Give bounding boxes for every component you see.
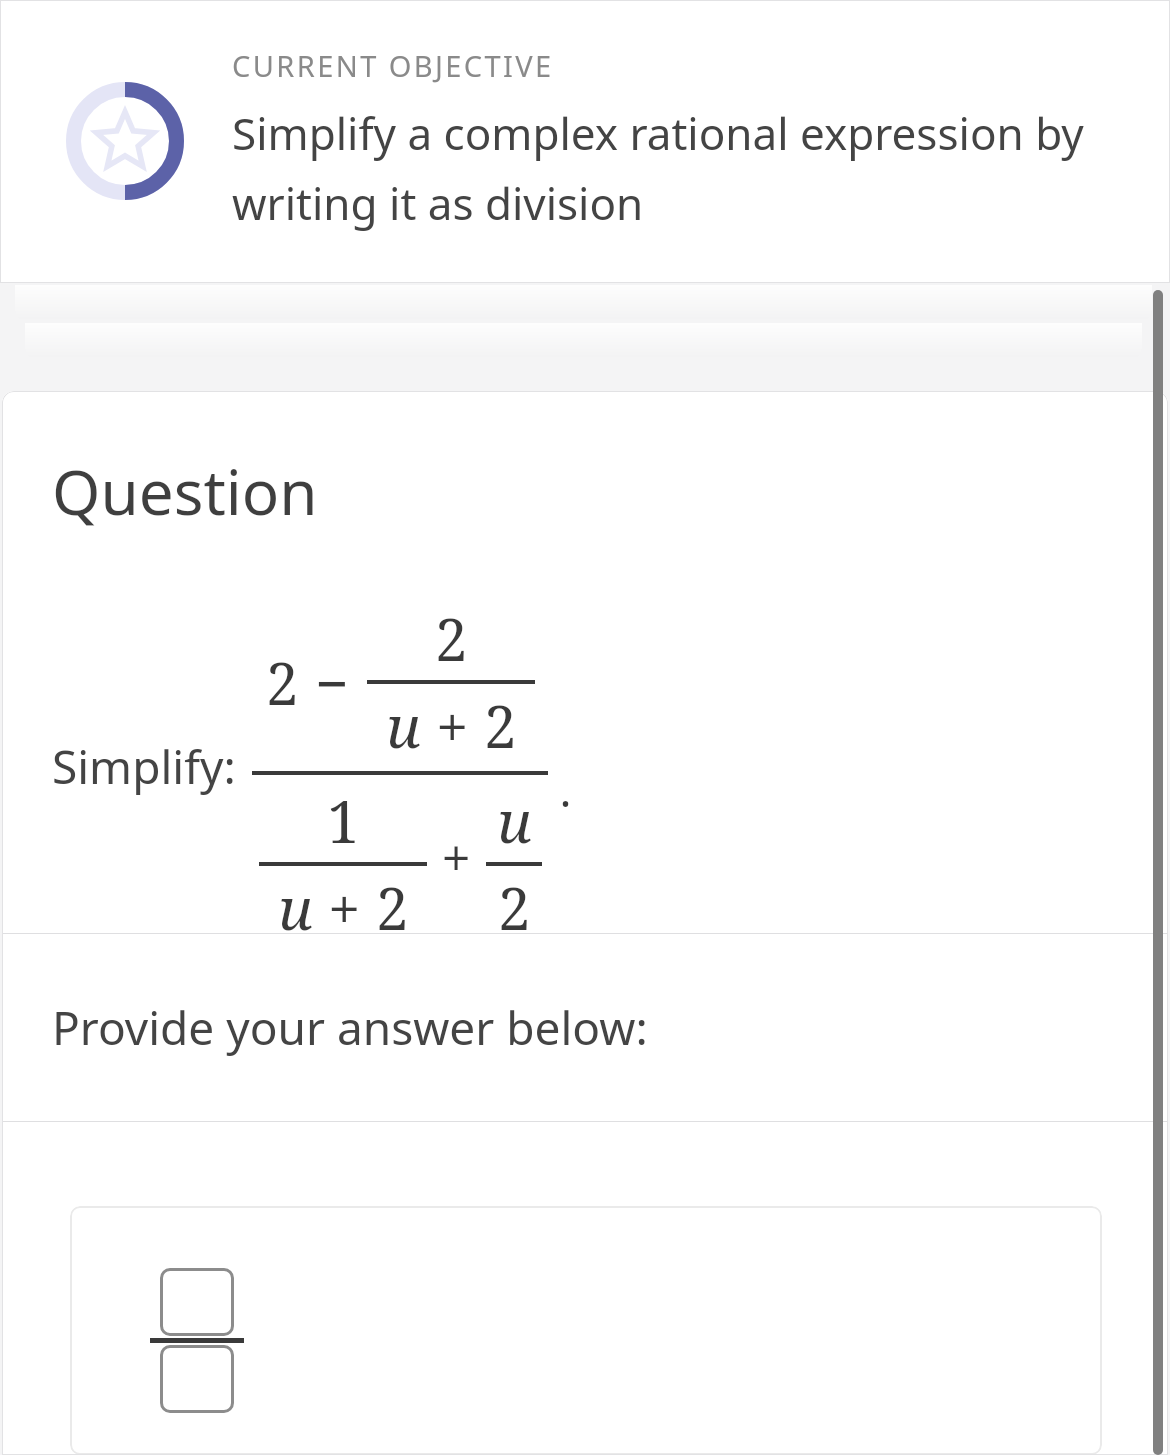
staticText: + [421,686,484,765]
button[interactable]: Denominator input [160,1345,234,1413]
staticText: 2 [498,868,531,933]
staticText: u [497,781,532,860]
staticText: − [315,643,349,722]
staticText: Question [52,449,318,533]
staticText: Simplify: [52,735,236,798]
button[interactable]: Objective progress [0,0,1170,283]
staticText: + [441,820,472,894]
staticText: 2 [435,599,468,678]
staticText: Simplify a complex rational expression b… [232,103,1110,233]
staticText: 2 [484,686,517,765]
staticText: . [560,760,571,820]
staticText: u [278,868,313,933]
staticText: CURRENT OBJECTIVE [232,46,554,85]
staticText: + [313,868,376,933]
button[interactable]: Numerator input [160,1268,234,1336]
staticText: 2 [376,868,409,933]
staticText: 1 [327,781,360,860]
other: Objective progress [66,82,184,200]
staticText: u [386,686,421,765]
button[interactable]: Numerator input [70,1206,1102,1455]
staticText: Provide your answer below: [52,996,648,1059]
staticText: 2 [266,643,299,722]
